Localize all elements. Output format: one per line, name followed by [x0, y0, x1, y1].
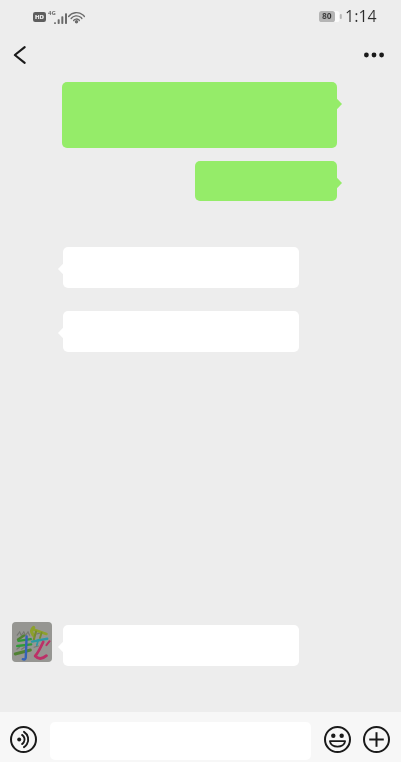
button[interactable]: Sent message [195, 161, 342, 201]
button[interactable]: More options [353, 32, 401, 74]
button[interactable]: Sent message [62, 82, 342, 148]
staticText: 4G [48, 9, 56, 17]
staticText: 80 [322, 10, 332, 22]
button[interactable]: Voice input [4, 720, 42, 758]
staticText: HD [35, 13, 44, 21]
button[interactable]: More functions [357, 720, 395, 758]
button[interactable]: Emoji [318, 720, 356, 758]
button[interactable]: Avatar [12, 622, 52, 662]
button[interactable]: Back [0, 32, 44, 74]
staticText: 1:14 [345, 5, 377, 27]
